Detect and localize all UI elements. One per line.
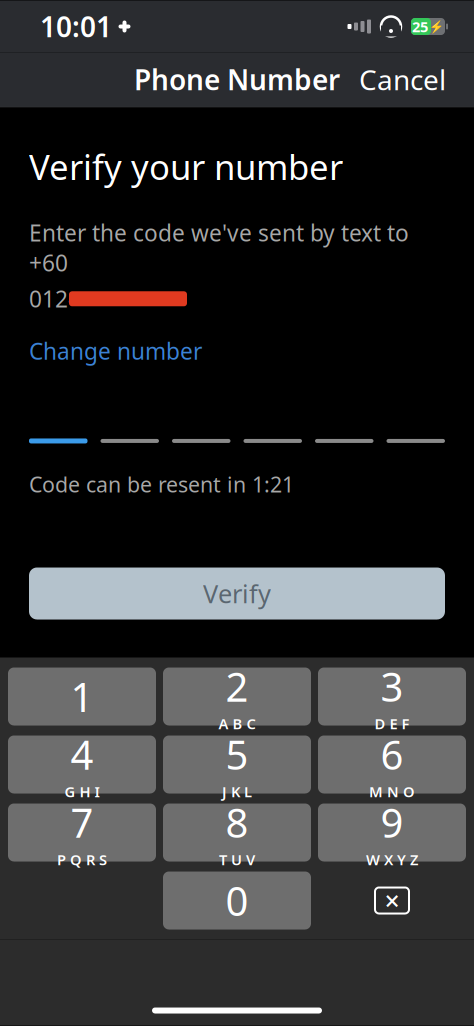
staticText: 5 bbox=[225, 728, 248, 781]
staticText: 2 bbox=[225, 660, 248, 713]
staticText: D E F bbox=[374, 714, 409, 733]
staticText: W X Y Z bbox=[366, 850, 418, 869]
staticText: 1 bbox=[70, 670, 93, 723]
staticText: Change number bbox=[29, 336, 202, 366]
button[interactable]: 6 bbox=[318, 735, 466, 793]
staticText: 25 bbox=[412, 17, 428, 36]
button[interactable]: Verify bbox=[29, 567, 445, 619]
staticText: 9 bbox=[380, 796, 403, 849]
button[interactable]: Cancel bbox=[345, 53, 460, 106]
button[interactable]: 5 bbox=[163, 735, 311, 793]
staticText: T U V bbox=[219, 850, 255, 869]
staticText: 012- bbox=[29, 284, 75, 314]
staticText: Cancel bbox=[359, 61, 446, 98]
staticText: Code can be resent in 1:21 bbox=[29, 470, 294, 498]
button[interactable]: 9 bbox=[318, 803, 466, 861]
staticText: × bbox=[384, 883, 399, 918]
staticText: 7 bbox=[70, 796, 93, 849]
staticText: G H I bbox=[64, 782, 99, 801]
staticText: P Q R S bbox=[57, 850, 107, 869]
button[interactable]: 8 bbox=[163, 803, 311, 861]
staticText: Verify your number bbox=[29, 143, 343, 189]
staticText: ⚡ bbox=[429, 20, 444, 33]
button[interactable]: Change number bbox=[29, 330, 202, 372]
staticText: 6 bbox=[380, 728, 403, 781]
staticText: 4 bbox=[70, 728, 93, 781]
button[interactable]: 3 bbox=[318, 667, 466, 725]
staticText: Verify bbox=[203, 577, 271, 610]
staticText: 10:01 bbox=[40, 8, 112, 45]
staticText: 8 bbox=[225, 796, 248, 849]
staticText: Phone Number bbox=[134, 61, 340, 98]
button[interactable]: 1 bbox=[8, 667, 156, 725]
button[interactable]: 7 bbox=[8, 803, 156, 861]
staticText: Enter the code we've sent by text to +60 bbox=[29, 217, 409, 278]
button[interactable]: 4 bbox=[8, 735, 156, 793]
button[interactable]: Delete bbox=[318, 871, 466, 929]
staticText: 3 bbox=[380, 660, 403, 713]
staticText: J K L bbox=[222, 782, 252, 801]
staticText: A B C bbox=[218, 714, 255, 733]
button[interactable]: 0 bbox=[163, 871, 311, 929]
staticText: 0 bbox=[225, 874, 248, 927]
staticText: M N O bbox=[369, 782, 415, 801]
button[interactable]: 2 bbox=[163, 667, 311, 725]
